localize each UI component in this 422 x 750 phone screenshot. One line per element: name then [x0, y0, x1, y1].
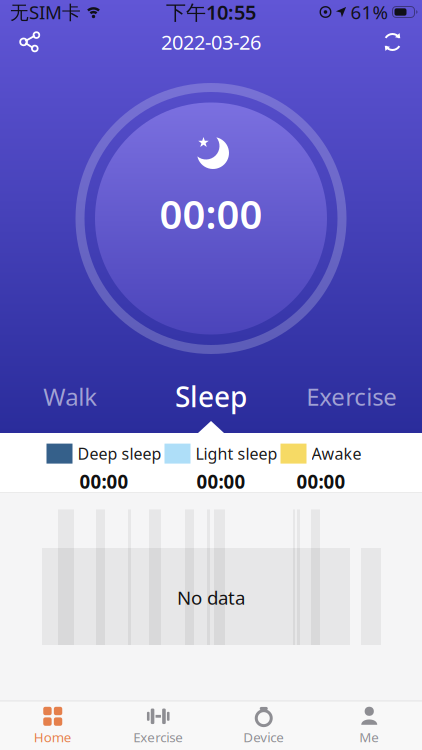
button[interactable]: Share — [16, 27, 45, 56]
staticText: Exercise — [306, 380, 397, 412]
staticText: 61% — [350, 0, 388, 24]
staticText: 00:00 — [196, 469, 245, 494]
button[interactable]: Exercise — [281, 380, 422, 412]
button[interactable]: Me — [316, 706, 422, 746]
staticText: Exercise — [133, 728, 183, 746]
staticText: 00:00 — [159, 187, 262, 240]
button[interactable]: Exercise — [105, 706, 211, 746]
staticText: 00:00 — [296, 469, 345, 494]
staticText: 无SIM卡 — [10, 0, 81, 24]
button[interactable]: Refresh — [379, 28, 406, 55]
staticText: 00:00 — [79, 469, 128, 494]
staticText: Walk — [43, 380, 97, 412]
staticText: Home — [34, 728, 72, 746]
staticText: Device — [243, 728, 284, 746]
staticText: No data — [177, 585, 245, 610]
button[interactable]: Device — [211, 706, 316, 746]
staticText: 2022-03-26 — [161, 29, 261, 55]
staticText: Light sleep — [195, 443, 277, 464]
staticText: Me — [359, 728, 379, 746]
button[interactable]: Sleep — [141, 378, 281, 415]
button[interactable]: Home — [0, 706, 105, 746]
staticText: Deep sleep — [77, 443, 161, 464]
staticText: 下午10:55 — [166, 0, 256, 25]
staticText: Sleep — [175, 378, 247, 415]
staticText: Awake — [311, 443, 361, 464]
button[interactable]: Walk — [0, 380, 141, 412]
